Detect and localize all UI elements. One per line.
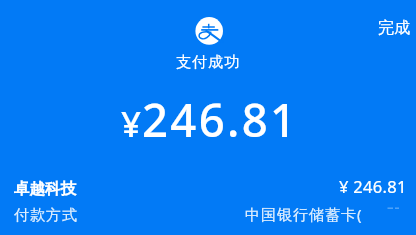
staticText: 卓越科技 — [14, 179, 76, 199]
staticText: 付款方式 — [14, 205, 78, 224]
staticText: 中国银行储蓄卡( — [245, 204, 363, 225]
staticText: ¥ — [121, 100, 142, 148]
other: Alipay — [193, 14, 227, 48]
staticText: 246.81 — [142, 88, 299, 150]
staticText: 支付成功 — [176, 52, 241, 71]
staticText: ¥ 246.81 — [339, 175, 407, 197]
button[interactable]: 完成 — [366, 8, 416, 48]
button[interactable] — [0, 201, 416, 235]
staticText: 完成 — [378, 18, 410, 38]
